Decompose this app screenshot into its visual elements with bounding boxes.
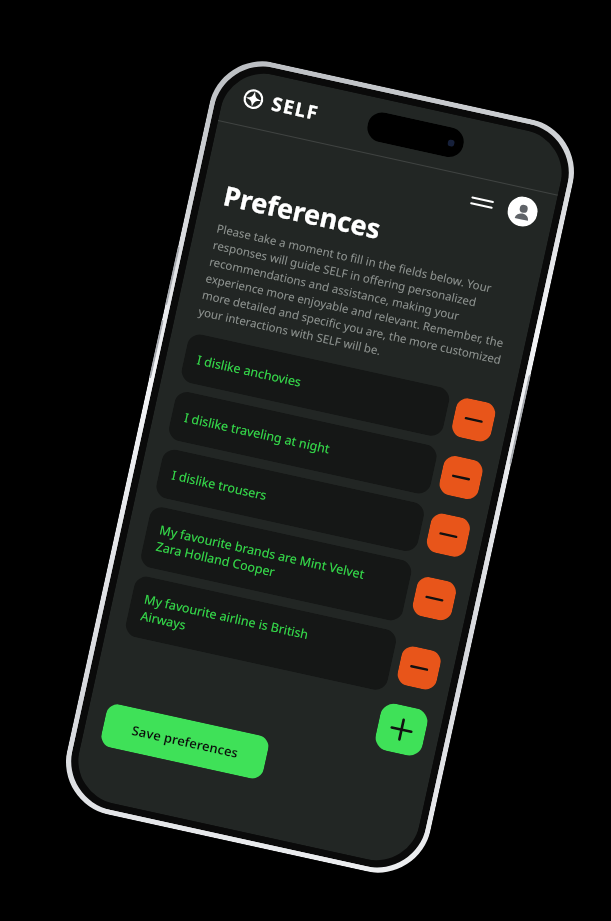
- button[interactable]: Remove preference: [395, 644, 443, 692]
- staticText: I dislike traveling at night: [183, 409, 332, 457]
- staticText: SELF: [269, 90, 322, 126]
- button[interactable]: Menu: [464, 185, 499, 220]
- staticText: Please take a moment to fill in the fiel…: [197, 220, 521, 386]
- button[interactable]: Remove preference: [437, 454, 485, 501]
- button[interactable]: My favourite airline is British Airways: [123, 574, 398, 692]
- staticText: I dislike anchovies: [195, 351, 304, 391]
- button[interactable]: Remove preference: [424, 511, 472, 559]
- button[interactable]: My favourite brands are Mint Velvet Zara…: [139, 505, 414, 623]
- button[interactable]: I dislike anchovies: [179, 332, 452, 438]
- staticText: My favourite brands are Mint Velvet Zara…: [154, 521, 367, 600]
- button[interactable]: Profile: [505, 194, 540, 229]
- button[interactable]: I dislike trousers: [154, 447, 426, 554]
- staticText: I dislike trousers: [170, 467, 268, 504]
- button[interactable]: Remove preference: [411, 575, 458, 622]
- button[interactable]: Add preference: [373, 701, 430, 758]
- staticText: Save preferences: [130, 721, 241, 762]
- button[interactable]: Save preferences: [99, 702, 271, 781]
- button[interactable]: Remove preference: [450, 396, 498, 444]
- button[interactable]: I dislike traveling at night: [167, 390, 439, 496]
- staticText: My favourite airline is British Airways: [139, 591, 310, 660]
- staticText: Preferences: [220, 176, 384, 247]
